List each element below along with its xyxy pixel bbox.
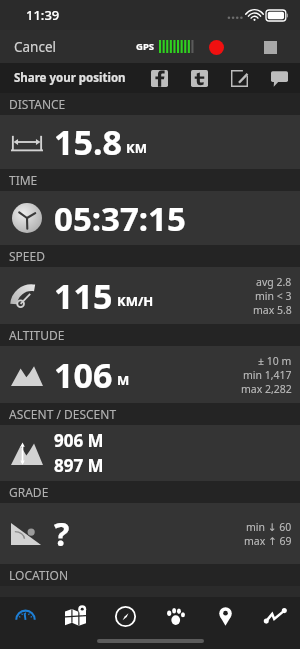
button[interactable]: 15.8: [0, 115, 300, 169]
button[interactable]: Stop: [258, 35, 282, 59]
button[interactable]: 115: [0, 267, 300, 324]
button[interactable]: Record: [204, 35, 228, 59]
staticText: ASCENT / DESCENT: [9, 406, 117, 422]
staticText: GRADE: [9, 484, 49, 500]
button[interactable]: Waypoints: [200, 597, 250, 635]
staticText: ?: [54, 512, 70, 556]
button[interactable]: Tracks: [150, 597, 200, 635]
staticText: SPEED: [9, 248, 45, 264]
button[interactable]: Share on Twitter: [186, 65, 212, 91]
button[interactable]: Compose: [226, 65, 252, 91]
staticText: DISTANCE: [9, 96, 66, 112]
staticText: min < 3: [255, 289, 292, 303]
button[interactable]: Graph: [250, 597, 300, 635]
staticText: 15.8: [54, 119, 122, 165]
button[interactable]: Compass: [100, 597, 150, 635]
button[interactable]: 05:37:15: [0, 191, 300, 245]
staticText: 106: [54, 352, 113, 398]
staticText: 897 M: [54, 454, 104, 477]
staticText: avg 2.8: [256, 275, 292, 289]
staticText: KM: [126, 139, 147, 157]
staticText: Cancel: [14, 38, 57, 56]
button[interactable]: ?: [0, 503, 300, 564]
staticText: ± 10 m: [258, 354, 292, 368]
button[interactable]: Cancel: [0, 32, 67, 62]
staticText: KM/H: [117, 292, 154, 310]
button[interactable]: 906 M: [0, 425, 300, 481]
staticText: GPS: [136, 40, 155, 53]
staticText: max 5.8: [253, 303, 292, 317]
staticText: TIME: [9, 172, 38, 188]
button[interactable]: Message: [266, 65, 292, 91]
staticText: Share your position: [14, 70, 126, 86]
staticText: M: [117, 371, 130, 389]
staticText: max 2,282: [241, 382, 292, 396]
button[interactable]: 106: [0, 346, 300, 403]
staticText: 11:39: [26, 6, 60, 24]
staticText: min 1,417: [243, 368, 292, 382]
button[interactable]: Map: [50, 597, 100, 635]
staticText: 115: [54, 273, 113, 319]
staticText: min ↓ 60: [246, 520, 292, 534]
staticText: max ↑ 69: [244, 534, 292, 548]
staticText: ALTITUDE: [9, 327, 65, 343]
staticText: 906 M: [54, 429, 104, 452]
button[interactable]: Share on Facebook: [146, 65, 172, 91]
button[interactable]: Dashboard: [0, 597, 50, 635]
staticText: LOCATION: [9, 567, 69, 583]
staticText: 05:37:15: [54, 196, 186, 241]
